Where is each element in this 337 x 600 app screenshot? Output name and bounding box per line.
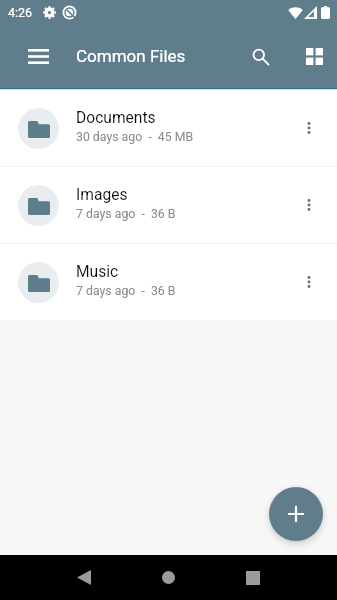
button[interactable]: Back	[62, 555, 106, 600]
button[interactable]: Images	[0, 167, 337, 243]
staticText: 7 days ago - 36 B	[76, 284, 176, 298]
button[interactable]: More options	[291, 187, 327, 223]
button[interactable]: Documents	[0, 90, 337, 166]
staticText: Common Files	[76, 46, 186, 66]
button[interactable]: Add	[269, 487, 323, 541]
staticText: Documents	[76, 109, 156, 127]
button[interactable]: More options	[291, 264, 327, 300]
staticText: Music	[76, 263, 119, 281]
staticText: Images	[76, 186, 128, 204]
button[interactable]: Music	[0, 244, 337, 320]
staticText: 7 days ago - 36 B	[76, 207, 176, 221]
button[interactable]: Open navigation menu	[16, 34, 60, 78]
staticText: 4:26	[8, 5, 33, 20]
button[interactable]: Recent apps	[231, 555, 275, 600]
button[interactable]: Search	[238, 34, 282, 78]
button[interactable]: Switch to grid view	[292, 34, 336, 78]
button[interactable]: Home	[146, 555, 190, 600]
button[interactable]: More options	[291, 110, 327, 146]
staticText: 30 days ago - 45 MB	[76, 130, 194, 144]
